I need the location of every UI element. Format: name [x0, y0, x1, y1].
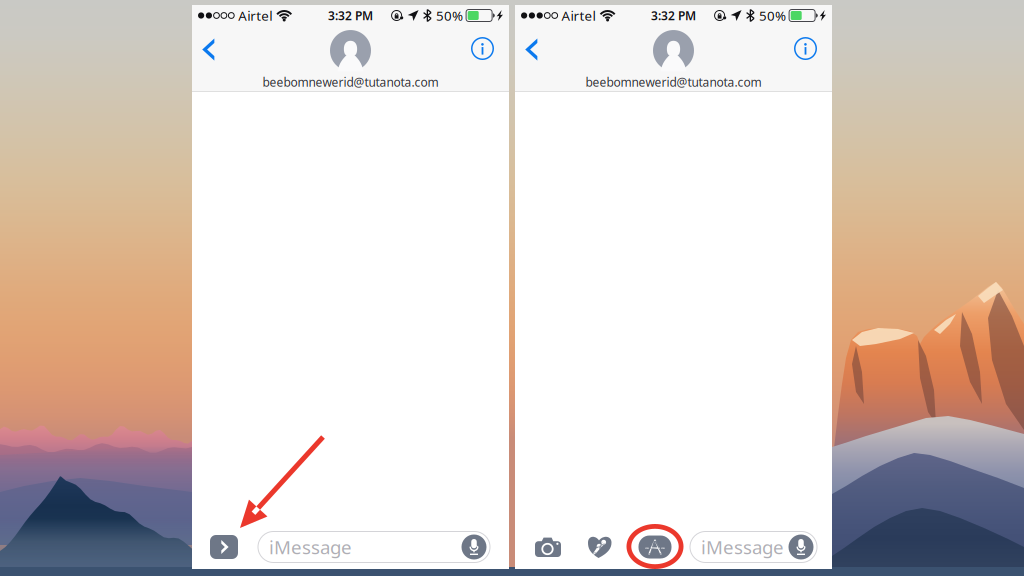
staticText: Airtel — [562, 7, 596, 24]
button[interactable]: Back — [515, 28, 554, 87]
button[interactable]: Back — [192, 28, 231, 87]
button[interactable]: Camera — [528, 530, 568, 564]
button[interactable]: Conversation details — [455, 28, 509, 87]
button[interactable]: Show apps — [205, 530, 243, 564]
button[interactable]: Digital Touch — [580, 529, 619, 565]
button[interactable]: iMessage — [258, 531, 490, 562]
button[interactable]: iMessage apps — [633, 530, 676, 563]
staticText: beebomnewerid@tutanota.com — [262, 74, 438, 90]
staticText: 50% — [436, 7, 463, 24]
staticText: 50% — [759, 7, 786, 24]
staticText: iMessage — [269, 535, 352, 559]
staticText: 3:32 PM — [651, 7, 696, 23]
staticText: 3:32 PM — [328, 7, 373, 23]
button[interactable]: Conversation details — [778, 28, 832, 87]
staticText: beebomnewerid@tutanota.com — [585, 74, 761, 90]
staticText: iMessage — [701, 535, 784, 559]
staticText: Airtel — [238, 7, 272, 24]
button[interactable]: iMessage — [690, 531, 817, 562]
